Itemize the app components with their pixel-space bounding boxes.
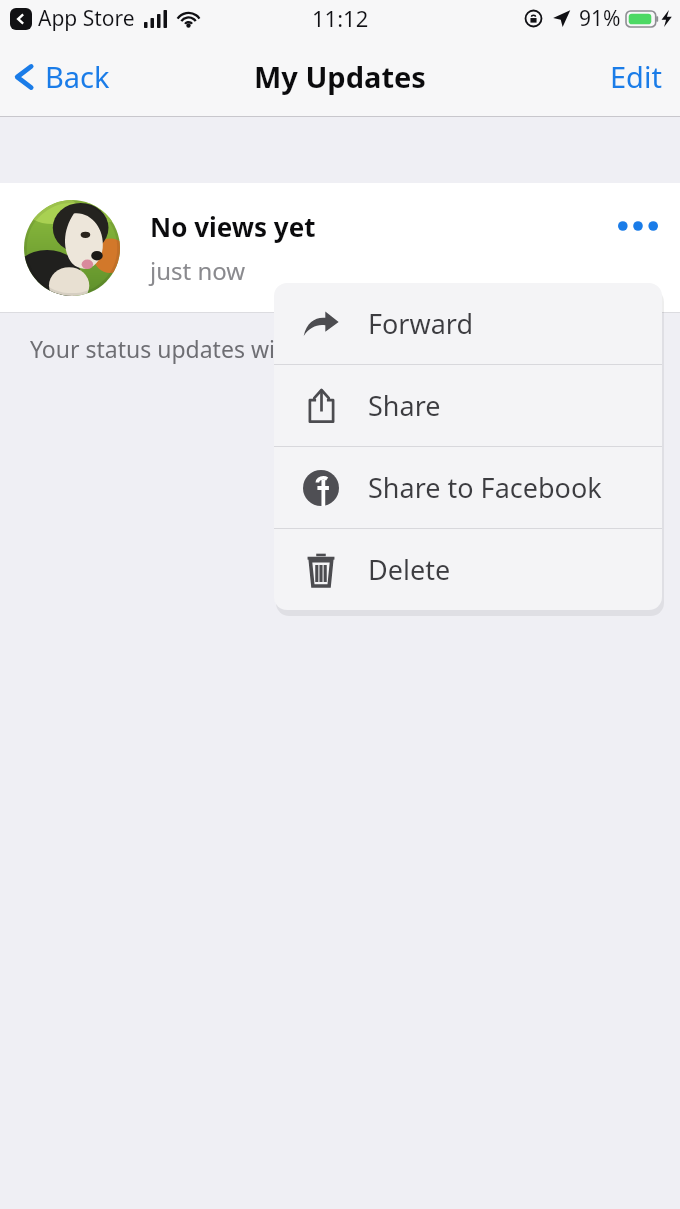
staticText: Back xyxy=(45,57,110,96)
staticText: Edit xyxy=(610,57,662,96)
staticText: 91% xyxy=(579,4,621,33)
button[interactable]: Edit xyxy=(592,47,680,106)
button[interactable]: Share xyxy=(274,365,662,446)
staticText: No views yet xyxy=(150,209,316,244)
staticText: App Store xyxy=(38,4,135,33)
staticText: Delete xyxy=(368,551,451,588)
staticText: My Updates xyxy=(254,57,426,96)
staticText: 11:12 xyxy=(312,3,369,33)
button[interactable]: Share to Facebook xyxy=(274,447,662,528)
button[interactable]: No views yet xyxy=(0,183,680,313)
staticText: Forward xyxy=(368,305,474,342)
staticText: Share to Facebook xyxy=(368,469,602,506)
staticText: just now xyxy=(150,254,246,287)
button[interactable]: Back xyxy=(0,49,122,104)
button[interactable]: Forward xyxy=(274,283,662,364)
staticText: Your status updates will appear here xyxy=(30,333,425,364)
button[interactable]: More options xyxy=(596,203,680,249)
staticText: Share xyxy=(368,387,441,424)
button[interactable]: Delete xyxy=(274,529,662,610)
